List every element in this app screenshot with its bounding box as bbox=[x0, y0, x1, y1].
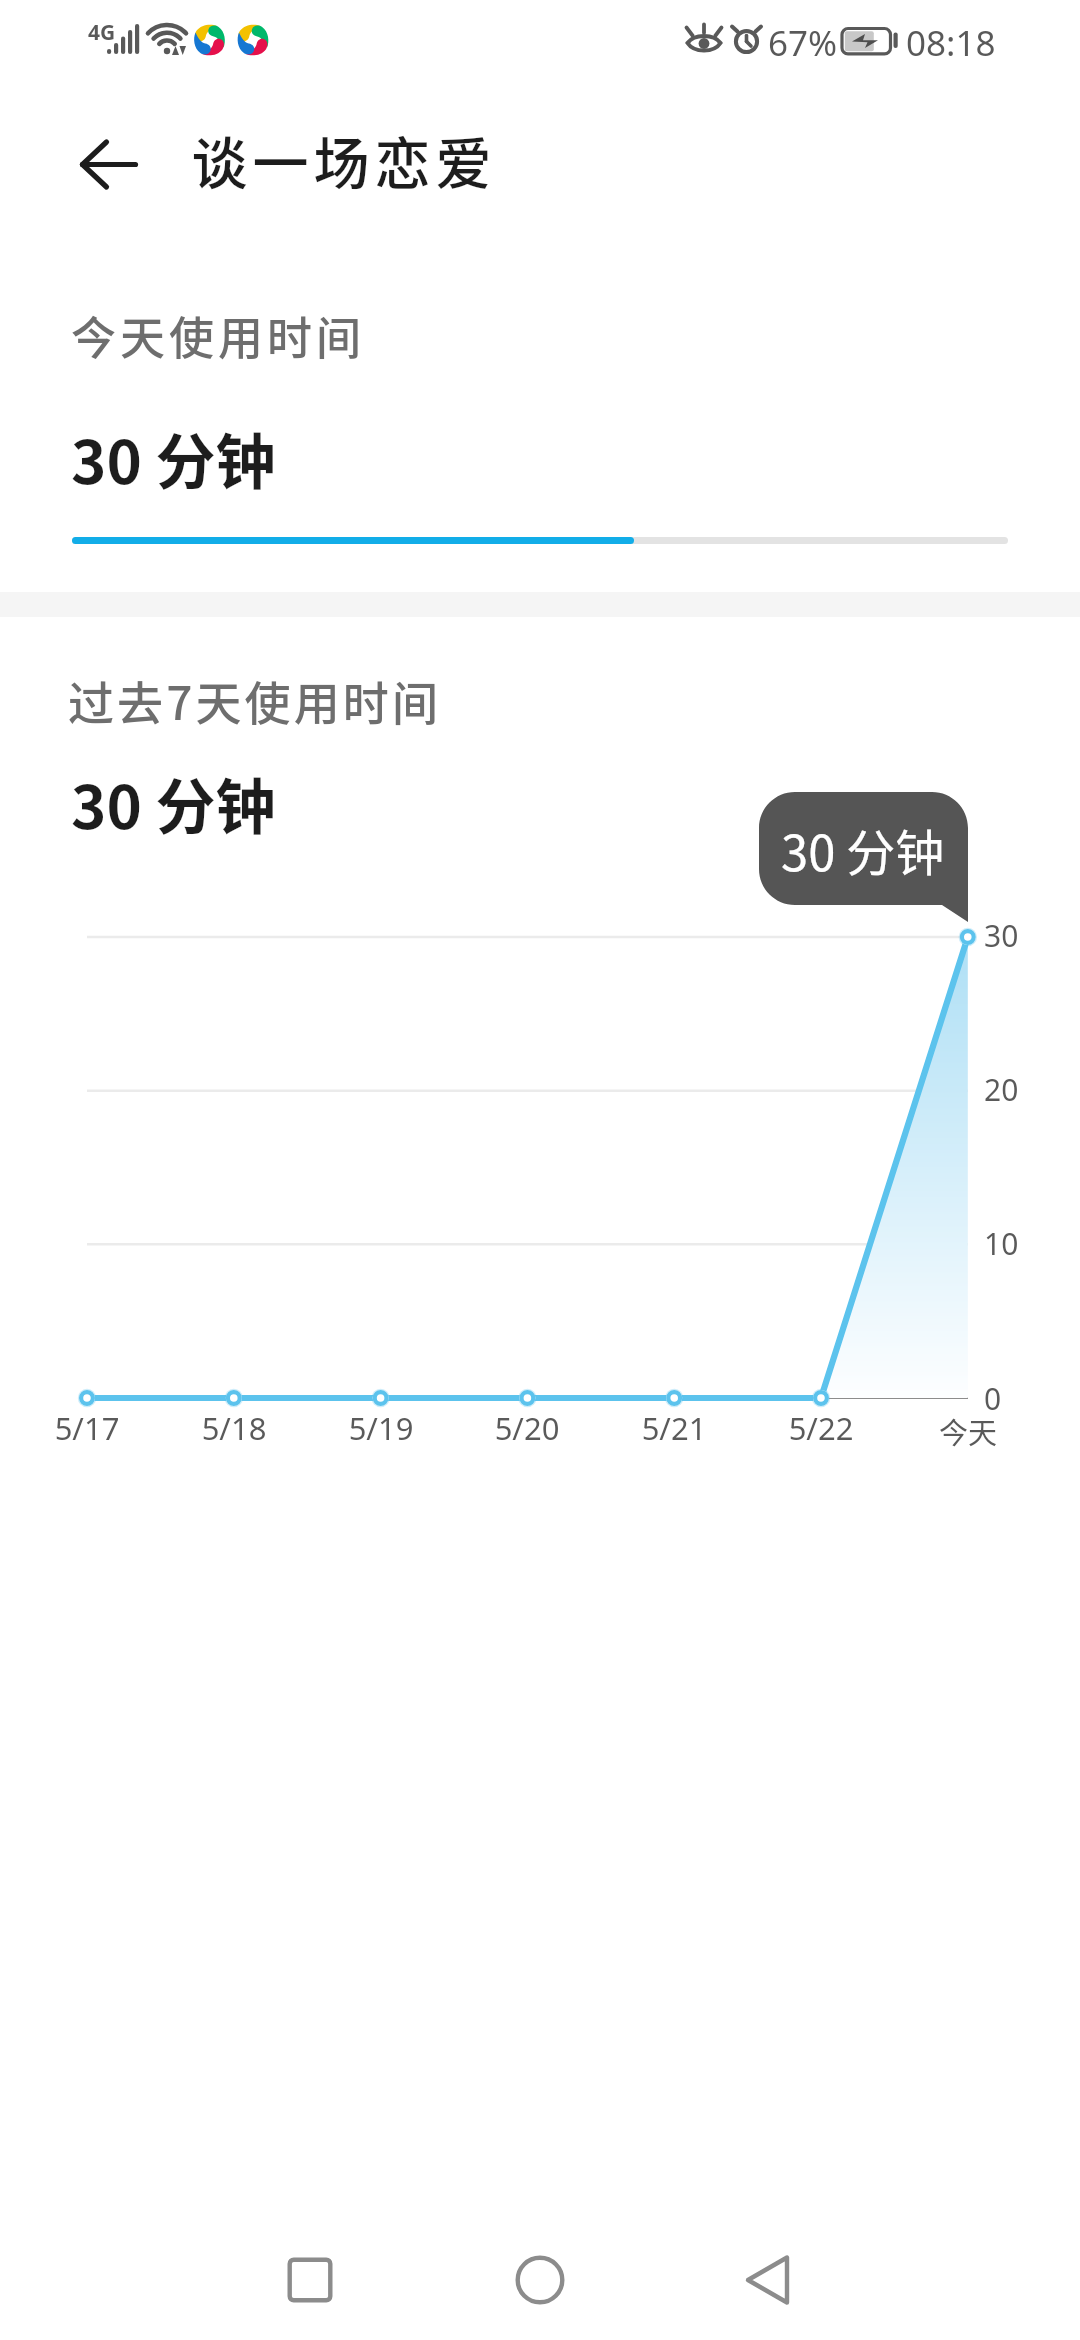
staticText: 30 分钟 bbox=[781, 814, 945, 885]
staticText: 5/18 bbox=[164, 1407, 304, 1449]
staticText: 5/20 bbox=[457, 1407, 597, 1449]
staticText: 30 分钟 bbox=[71, 759, 276, 846]
staticText: 4G bbox=[88, 18, 116, 47]
staticText: 08:18 bbox=[906, 19, 996, 67]
staticText: 0 bbox=[984, 1378, 1002, 1419]
staticText: 今天 bbox=[898, 1410, 1038, 1452]
staticText: 5/22 bbox=[751, 1407, 891, 1449]
button[interactable]: Back bbox=[48, 110, 164, 222]
staticText: 67% bbox=[768, 19, 838, 67]
button[interactable]: Home bbox=[476, 2216, 604, 2340]
staticText: 今天使用时间 bbox=[71, 303, 366, 368]
staticText: 10 bbox=[984, 1223, 1019, 1264]
staticText: 5/17 bbox=[17, 1407, 157, 1449]
button[interactable]: Recents bbox=[246, 2216, 374, 2340]
staticText: 谈一场恋爱 bbox=[189, 119, 494, 200]
button[interactable]: Back bbox=[704, 2216, 832, 2340]
staticText: 5/21 bbox=[604, 1407, 744, 1449]
staticText: 30 bbox=[984, 915, 1019, 956]
staticText: 30 分钟 bbox=[71, 414, 276, 501]
staticText: 20 bbox=[984, 1069, 1019, 1110]
staticText: 5/19 bbox=[311, 1407, 451, 1449]
staticText: 过去7天使用时间 bbox=[68, 667, 442, 734]
